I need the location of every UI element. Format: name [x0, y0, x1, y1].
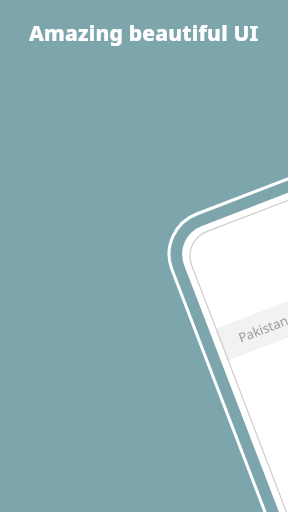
- button[interactable]: Amazing beautiful UI showcase: [0, 0, 288, 512]
